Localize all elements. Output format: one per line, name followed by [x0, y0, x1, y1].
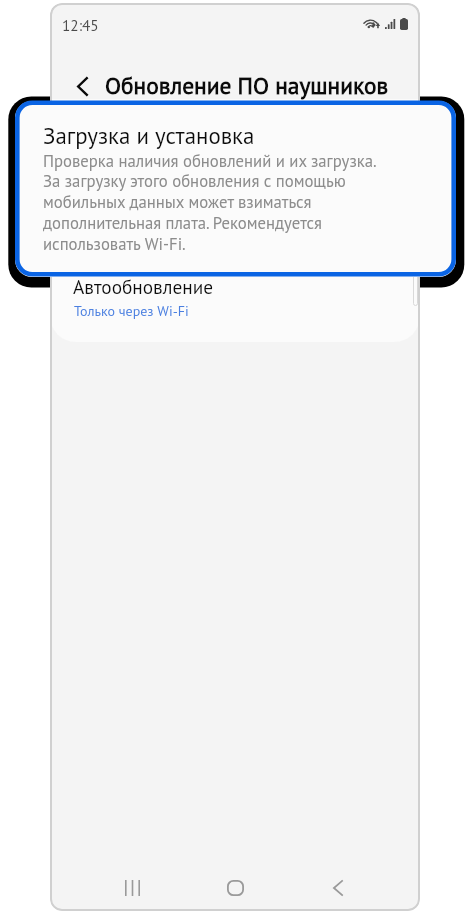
- staticText: Обновление ПО наушников: [105, 70, 389, 100]
- staticText: 12:45: [62, 15, 99, 35]
- staticText: Загрузка и установка: [43, 121, 255, 151]
- staticText: Проверка наличия обновлений и их загрузк…: [73, 133, 382, 205]
- button[interactable]: Недавние приложения: [102, 863, 162, 911]
- button[interactable]: Главный экран: [205, 863, 265, 911]
- staticText: Только через Wi-Fi: [74, 302, 189, 320]
- button[interactable]: Автообновление: [50, 274, 420, 326]
- button[interactable]: Назад: [308, 863, 368, 911]
- staticText: Проверка наличия обновлений и их загрузк…: [43, 150, 377, 255]
- button[interactable]: Назад: [60, 64, 104, 108]
- staticText: Загрузка и установка: [73, 108, 252, 133]
- staticText: Автообновление: [73, 274, 213, 299]
- button[interactable]: Загрузка и установка: [15, 101, 456, 277]
